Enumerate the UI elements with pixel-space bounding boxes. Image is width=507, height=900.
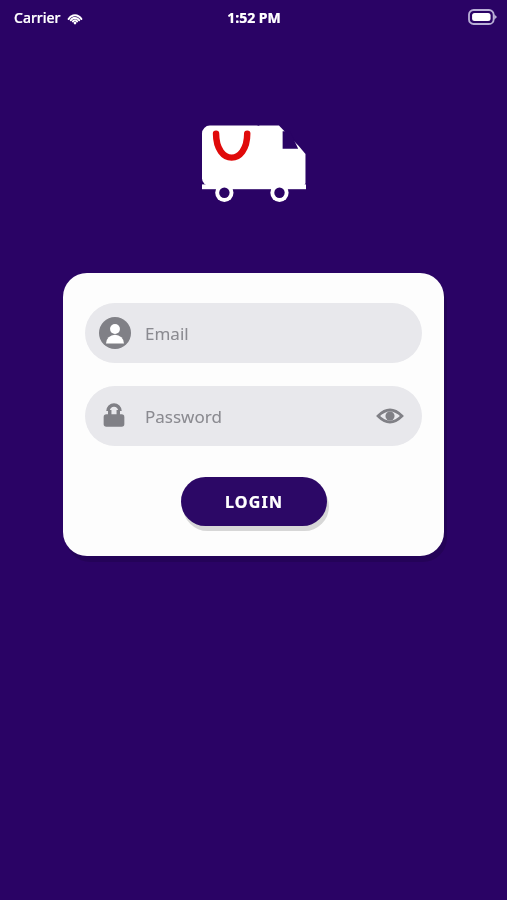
staticText: Password	[145, 405, 222, 428]
button[interactable]: Show password	[374, 400, 406, 432]
staticText: Carrier	[14, 8, 61, 27]
staticText: 1:52 PM	[227, 8, 281, 27]
button[interactable]: Email	[85, 303, 422, 363]
button[interactable]: LOGIN	[181, 477, 327, 526]
staticText: LOGIN	[225, 491, 284, 513]
staticText: Email	[145, 322, 189, 345]
button[interactable]: Password	[85, 386, 422, 446]
